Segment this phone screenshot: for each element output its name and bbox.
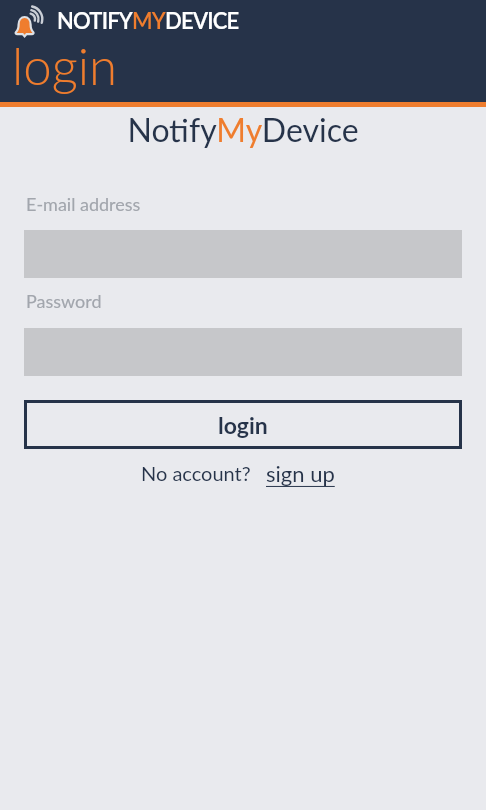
staticText: Password [26,290,102,312]
staticText: login [12,35,118,96]
button[interactable]: login [24,400,462,449]
staticText: No account? [141,461,251,485]
staticText: login [218,411,268,439]
button[interactable]: sign up [266,460,335,486]
staticText: NOTIFYMYDEVICE [57,7,239,33]
staticText: NotifyMyDevice [0,110,486,148]
staticText: E-mail address [26,193,141,215]
